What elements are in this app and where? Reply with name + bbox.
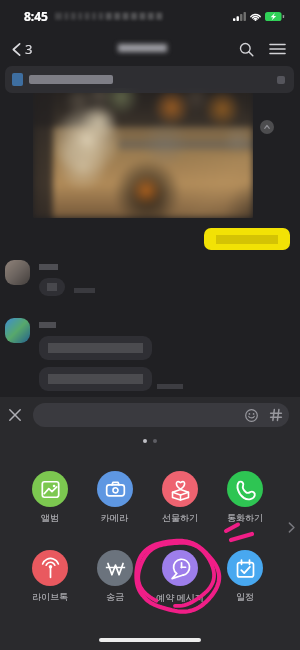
button[interactable]: 선물하기 <box>147 471 212 523</box>
button[interactable]: Emoji <box>242 406 260 424</box>
staticText: 예약 메시지 <box>156 591 204 603</box>
staticText: 카메라 <box>101 512 128 523</box>
button[interactable]: 카메라 <box>82 471 147 523</box>
button[interactable]: Menu <box>264 36 290 62</box>
button[interactable]: 앨범 <box>17 471 82 523</box>
button[interactable] <box>5 66 294 93</box>
button[interactable]: Close <box>4 404 26 426</box>
button[interactable]: Emoji <box>33 403 289 427</box>
button[interactable] <box>39 367 152 391</box>
button[interactable]: 예약 메시지 <box>147 550 212 603</box>
button[interactable] <box>39 336 152 360</box>
staticText: 통화하기 <box>227 512 263 523</box>
button[interactable]: Next page <box>284 520 298 534</box>
button[interactable]: Hashtag <box>267 406 285 424</box>
button[interactable]: 라이브톡 <box>17 550 82 602</box>
staticText: 앨범 <box>41 512 59 523</box>
staticText: 선물하기 <box>162 512 198 523</box>
button[interactable] <box>204 228 290 250</box>
button[interactable] <box>5 260 30 285</box>
button[interactable] <box>39 278 65 296</box>
staticText: 라이브톡 <box>32 591 68 602</box>
button[interactable]: 통화하기 <box>212 471 277 523</box>
staticText: 3 <box>25 40 33 58</box>
staticText: 8:45 <box>24 8 48 24</box>
button[interactable]: 일정 <box>212 550 277 602</box>
button[interactable] <box>5 318 30 343</box>
staticText: 일정 <box>236 591 254 602</box>
staticText: 송금 <box>106 591 124 602</box>
button[interactable]: 송금 <box>82 550 147 602</box>
button[interactable]: Search <box>233 36 259 62</box>
button[interactable]: Back <box>10 36 35 62</box>
button[interactable] <box>33 88 253 218</box>
button[interactable]: Expand <box>260 120 274 134</box>
